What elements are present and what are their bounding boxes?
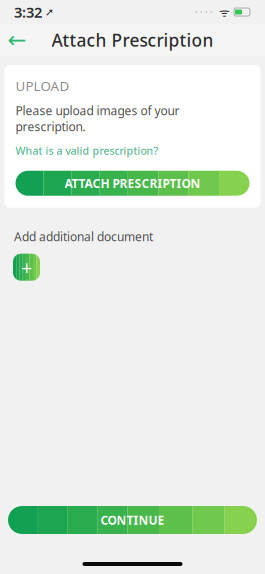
button[interactable]: Back (0, 25, 34, 55)
staticText: ᯤ (213, 4, 233, 20)
staticText: 3:32 (14, 2, 42, 22)
staticText: ATTACH PRESCRIPTION (64, 175, 200, 191)
staticText: ← (7, 27, 26, 53)
staticText: ➚ (42, 6, 54, 18)
staticText: CONTINUE (100, 512, 164, 528)
staticText: + (21, 254, 32, 280)
staticText: What is a valid prescription? (15, 144, 158, 158)
button[interactable]: What is a valid prescription? (15, 144, 158, 158)
button[interactable]: CONTINUE (8, 506, 257, 534)
staticText: Add additional document (14, 229, 153, 245)
button[interactable]: Add document (13, 254, 40, 281)
button[interactable]: ATTACH PRESCRIPTION (15, 171, 249, 196)
staticText: Attach Prescription (51, 28, 213, 51)
staticText: UPLOAD (15, 77, 69, 95)
staticText: · · · · (195, 6, 213, 18)
staticText: Please upload images of your prescriptio… (15, 103, 179, 135)
